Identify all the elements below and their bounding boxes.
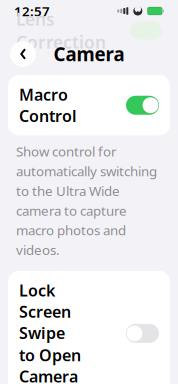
staticText: Macro Control	[19, 84, 77, 126]
staticText: Show control for automatically switching…	[16, 142, 157, 259]
button[interactable]: Macro Control	[8, 75, 170, 135]
button[interactable]: Back	[8, 39, 38, 69]
staticText: 12:57	[14, 2, 50, 20]
staticText: Lock Screen Swipe	[19, 280, 71, 343]
button[interactable]: Lock Screen Swipe	[8, 271, 170, 384]
staticText: to Open Camera	[19, 344, 81, 384]
staticText: Lens Correction	[16, 7, 106, 53]
staticText: Camera	[53, 42, 124, 66]
